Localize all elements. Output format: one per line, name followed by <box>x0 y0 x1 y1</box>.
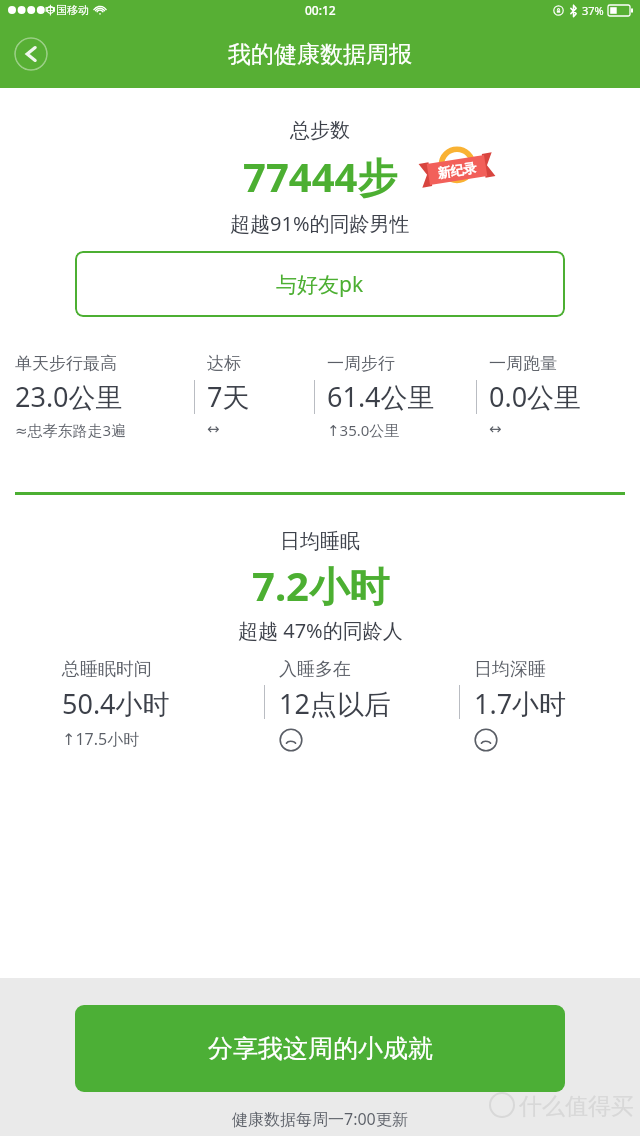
staticText: ↑35.0公里 <box>327 420 400 440</box>
staticText: ↔ <box>489 420 502 437</box>
staticText: 入睡多在 <box>279 658 351 681</box>
staticText: 一周步行 <box>327 353 395 374</box>
staticText: 我的健康数据周报 <box>228 40 412 69</box>
staticText: 分享我这周的小成就 <box>208 1033 433 1064</box>
staticText: ↑17.5小时 <box>62 728 140 750</box>
staticText: 总步数 <box>290 118 350 143</box>
staticText: 超越91%的同龄男性 <box>230 210 410 237</box>
staticText: 1.7小时 <box>474 685 567 722</box>
staticText: 37% <box>582 3 604 18</box>
staticText: 日均睡眠 <box>280 529 360 554</box>
staticText: 0.0公里 <box>489 378 582 415</box>
staticText: 日均深睡 <box>474 658 546 681</box>
staticText: 中国移动 <box>45 3 89 17</box>
staticText: 达标 <box>207 353 241 374</box>
staticText: 7天 <box>207 378 250 415</box>
staticText: 61.4公里 <box>327 378 435 415</box>
staticText: 12点以后 <box>279 685 391 722</box>
staticText: 新纪录 <box>419 156 495 184</box>
staticText: 00:12 <box>305 2 336 18</box>
button[interactable]: 返回 <box>14 37 48 71</box>
staticText: 单天步行最高 <box>15 353 117 374</box>
staticText: 与好友pk <box>276 270 364 299</box>
button[interactable]: 与好友pk <box>75 251 565 317</box>
staticText: 超越 47%的同龄人 <box>238 617 403 644</box>
staticText: 7.2小时 <box>252 558 389 613</box>
staticText: 什么值得买 <box>519 1092 634 1118</box>
button[interactable]: 分享我这周的小成就 <box>75 1005 565 1092</box>
staticText: 一周跑量 <box>489 353 557 374</box>
staticText: 总睡眠时间 <box>62 658 152 681</box>
staticText: ↔ <box>207 420 220 437</box>
staticText: 23.0公里 <box>15 378 123 415</box>
staticText: 50.4小时 <box>62 685 170 722</box>
staticText: 77444步 <box>243 149 398 204</box>
staticText: 健康数据每周一7:00更新 <box>232 1108 408 1130</box>
staticText: ≈忠孝东路走3遍 <box>15 420 127 440</box>
